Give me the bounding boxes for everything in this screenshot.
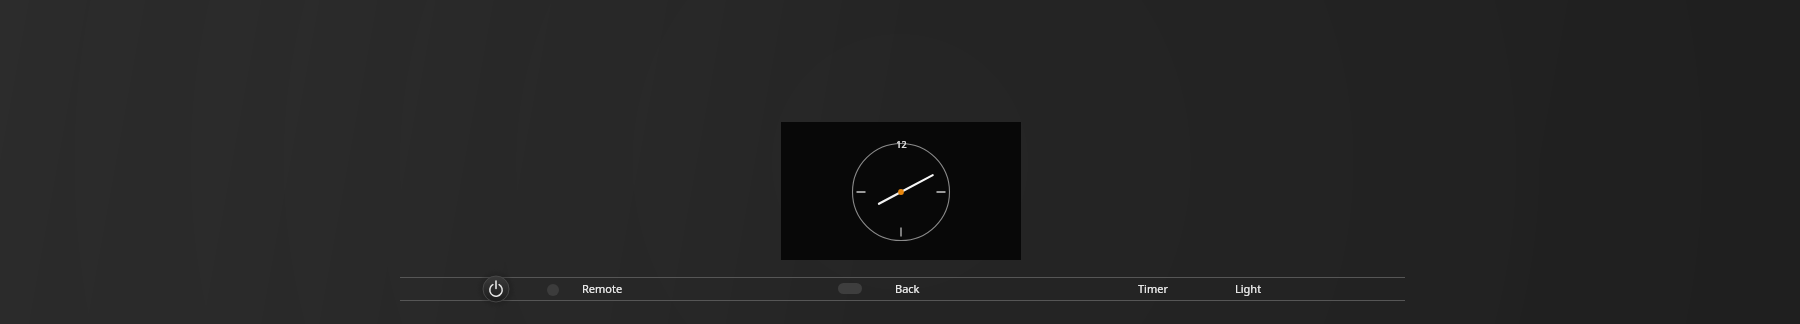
button[interactable]: Power	[476, 269, 516, 309]
button[interactable]: Clock	[781, 122, 1021, 260]
staticText: Timer	[1138, 281, 1168, 296]
button[interactable]: Remote	[582, 281, 623, 296]
staticText: Back	[895, 281, 920, 296]
staticText: Light	[1235, 281, 1262, 296]
button[interactable]: Back	[895, 281, 920, 296]
staticText: Remote	[582, 281, 623, 296]
button[interactable]: Light	[1235, 281, 1262, 296]
staticText: 12	[896, 138, 907, 150]
button[interactable]: Timer	[1138, 281, 1168, 296]
